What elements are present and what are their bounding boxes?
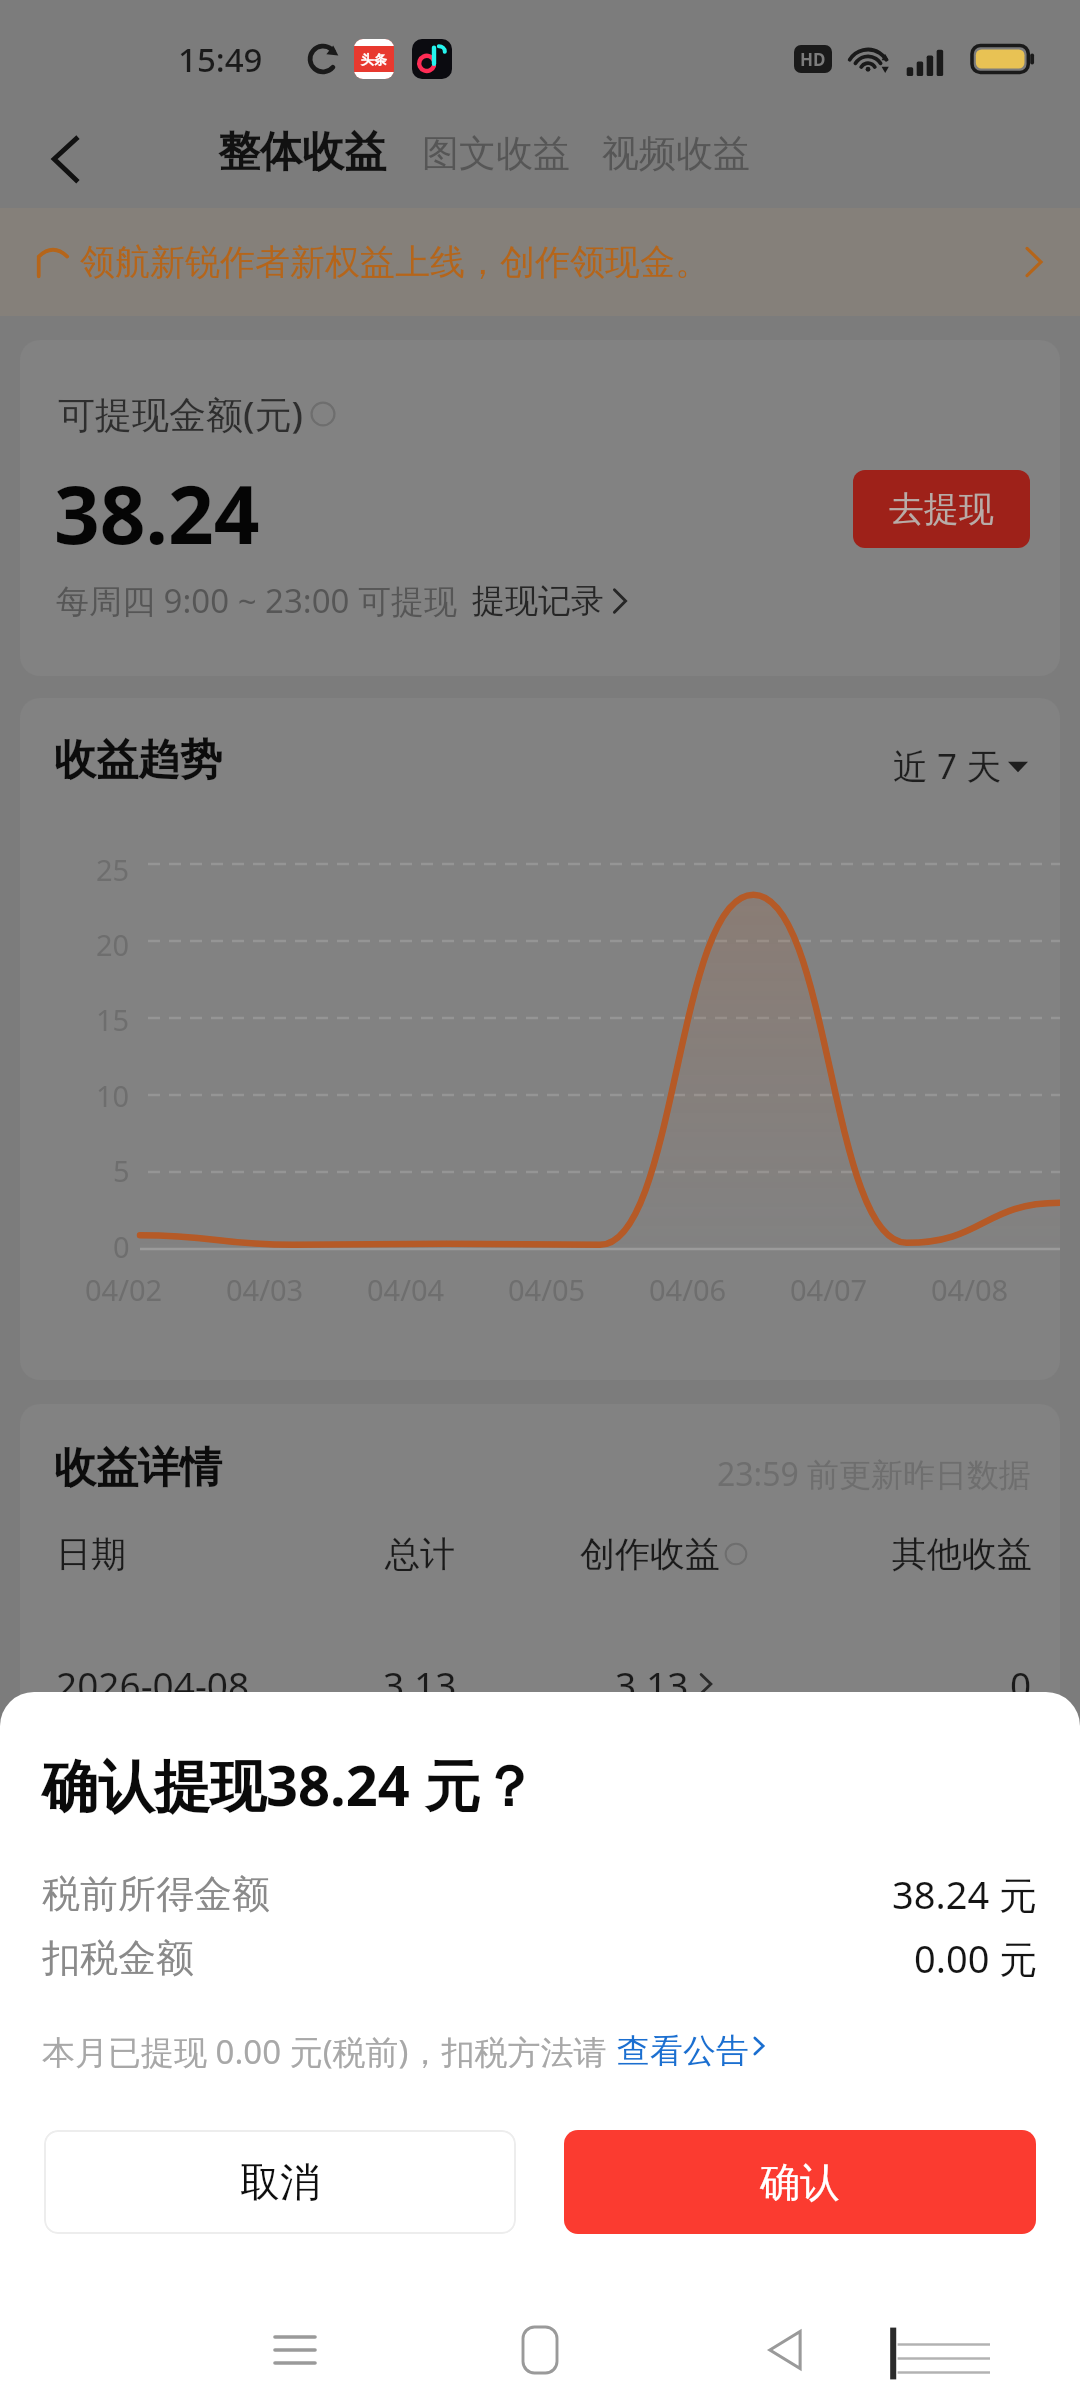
button[interactable]: Home — [495, 2305, 585, 2395]
staticText: 04/08 — [931, 1270, 1009, 1309]
button[interactable]: 取消 — [44, 2130, 516, 2234]
button[interactable]: 去提现 — [853, 470, 1030, 548]
staticText: 10 — [96, 1076, 130, 1115]
staticText: 整体收益 — [218, 126, 386, 179]
staticText: 收益趋势 — [54, 734, 222, 787]
staticText: 04/03 — [226, 1270, 304, 1309]
button[interactable]: 领航新锐作者新权益上线，创作领现金。 — [0, 208, 1080, 316]
staticText: 38.24 — [54, 458, 260, 567]
staticText: 04/05 — [508, 1270, 586, 1309]
staticText: 每周四 9:00 ~ 23:00 可提现 — [56, 578, 458, 623]
staticText: 3.13 — [615, 1659, 689, 1709]
staticText: 查看公告 — [617, 2030, 749, 2072]
staticText: 04/04 — [367, 1270, 445, 1309]
staticText: 提现记录 — [472, 580, 604, 622]
staticText: 38.24 元 — [892, 1868, 1038, 1920]
staticText: 取消 — [240, 2157, 320, 2207]
staticText: 23:59 前更新昨日数据 — [717, 1452, 1032, 1496]
staticText: 近 7 天 — [893, 742, 1002, 790]
button[interactable]: 查看公告 — [617, 2030, 765, 2072]
staticText: 5 — [113, 1151, 130, 1190]
staticText: 领航新锐作者新权益上线，创作领现金。 — [80, 240, 710, 284]
staticText: 总计 — [385, 1532, 455, 1576]
staticText: 0 — [113, 1227, 130, 1266]
staticText: 04/02 — [85, 1270, 163, 1309]
button[interactable]: 近 7 天 — [893, 742, 1028, 790]
staticText: 视频收益 — [602, 130, 750, 177]
button[interactable]: 整体收益 — [218, 126, 386, 179]
button[interactable]: Back — [22, 118, 112, 200]
staticText: 本月已提现 0.00 元(税前)，扣税方法请 — [42, 2029, 607, 2074]
staticText: 图文收益 — [422, 130, 570, 177]
staticText: 日期 — [56, 1532, 126, 1576]
staticText: 15:49 — [178, 37, 263, 82]
button[interactable]: 图文收益 — [422, 130, 570, 179]
staticText: 04/06 — [649, 1270, 727, 1309]
button[interactable]: 提现记录 — [472, 580, 628, 622]
staticText: 确认提现38.24 元？ — [42, 1746, 537, 1822]
staticText: 2026-04-08 — [56, 1659, 250, 1709]
staticText: 0.00 元 — [914, 1932, 1038, 1984]
button[interactable]: 2026-04-08 — [20, 1634, 1060, 1734]
staticText: 20 — [96, 925, 130, 964]
button[interactable]: Recent apps — [250, 2305, 340, 2395]
staticText: 扣税金额 — [42, 1934, 194, 1982]
staticText: 去提现 — [889, 487, 994, 531]
button[interactable]: Back — [740, 2305, 830, 2395]
button[interactable]: 视频收益 — [602, 130, 750, 179]
staticText: HD — [800, 48, 826, 71]
staticText: 15 — [96, 1000, 130, 1039]
staticText: 25 — [96, 850, 130, 889]
staticText: 0 — [1010, 1659, 1032, 1709]
staticText: 确认 — [760, 2157, 840, 2207]
staticText: 收益详情 — [54, 1442, 222, 1495]
staticText: 创作收益 — [580, 1532, 720, 1576]
staticText: 3.13 — [383, 1659, 457, 1709]
staticText: 其他收益 — [892, 1532, 1032, 1576]
staticText: 税前所得金额 — [42, 1870, 270, 1918]
staticText: 04/07 — [790, 1270, 868, 1309]
staticText: 头条 — [361, 51, 387, 67]
staticText: 可提现金额(元) — [58, 388, 304, 439]
button[interactable]: 确认 — [564, 2130, 1036, 2234]
